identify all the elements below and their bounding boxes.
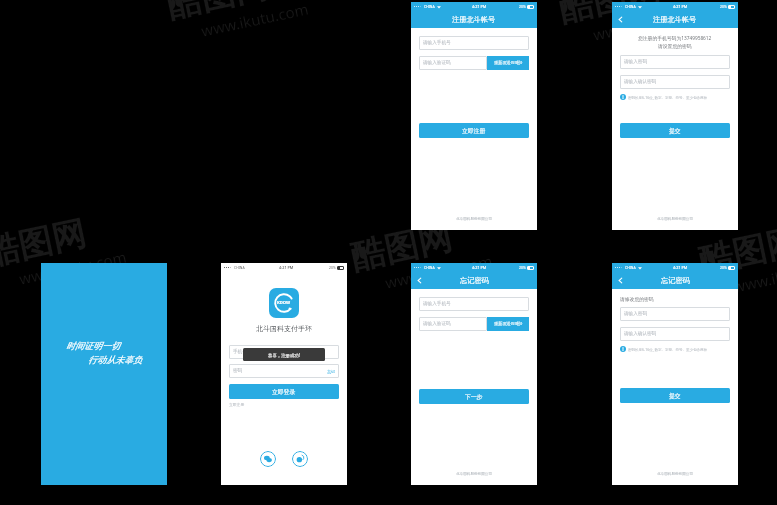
staticText: KDOW: [277, 300, 291, 306]
staticText: 酷图网: [0, 212, 90, 275]
staticText: CHINA: [424, 265, 435, 270]
staticText: www.ikutu.com: [199, 0, 310, 41]
staticText: 4:21 PM: [472, 4, 487, 9]
staticText: 注册北斗帐号: [653, 15, 697, 24]
staticText: 注册北斗帐号: [452, 15, 496, 24]
staticText: 恭喜，注册成功!: [268, 352, 300, 358]
staticText: CHINA: [625, 4, 636, 9]
staticText: 重新发送(59秒): [494, 60, 523, 66]
staticText: 密码长度6-16位, 数字、字母、符号、至少包含两种: [628, 95, 707, 100]
staticText: 您注册的手机号码为13749958612: [638, 35, 712, 42]
staticText: 立即注册: [462, 127, 486, 134]
staticText: 4:21 PM: [279, 265, 294, 270]
staticText: 北斗国科股份有限公司: [456, 217, 492, 222]
staticText: 4:21 PM: [472, 265, 487, 270]
staticText: 下一步: [465, 393, 483, 400]
staticText: www.ikutu.com: [731, 254, 777, 297]
button[interactable]: 手机号: [229, 345, 339, 359]
staticText: 酷图网: [347, 216, 456, 279]
staticText: 立即登录: [272, 388, 296, 395]
staticText: 请输入确认密码: [624, 331, 657, 337]
button[interactable]: Weibo login: [292, 451, 308, 467]
staticText: 20%: [519, 265, 526, 270]
staticText: www.ikutu.com: [591, 2, 702, 45]
button[interactable]: 请输入确认密码: [620, 327, 730, 341]
staticText: 时间证明一切: [66, 340, 120, 351]
button[interactable]: 提交: [620, 123, 730, 138]
button[interactable]: 提交: [620, 388, 730, 403]
staticText: www.ikutu.com: [17, 246, 128, 289]
button[interactable]: 立即注册: [229, 402, 245, 407]
staticText: 忘记密码: [460, 276, 489, 285]
staticText: 密码长度6-16位, 数字、字母、符号、至少包含两种: [628, 347, 707, 352]
staticText: CHINA: [625, 265, 636, 270]
staticText: 忘记: [327, 369, 335, 374]
staticText: 北斗国科股份有限公司: [657, 217, 693, 222]
staticText: www.ikutu.com: [383, 250, 494, 293]
button[interactable]: 请输入手机号: [419, 297, 529, 311]
button[interactable]: Back: [612, 272, 628, 289]
staticText: CHINA: [234, 265, 245, 270]
button[interactable]: 请输入密码: [620, 307, 730, 321]
staticText: 20%: [720, 4, 727, 9]
button[interactable]: 下一步: [419, 389, 529, 404]
staticText: 行动从未辜负: [88, 354, 142, 365]
staticText: 请修改您的密码: [620, 296, 654, 302]
staticText: 4:21 PM: [673, 265, 688, 270]
staticText: 北斗国科股份有限公司: [456, 472, 492, 477]
staticText: 请输入验证码: [423, 60, 451, 66]
staticText: 请输入密码: [624, 59, 647, 65]
staticText: 提交: [669, 127, 681, 134]
staticText: 20%: [329, 265, 336, 270]
button[interactable]: 请输入验证码: [419, 56, 487, 70]
button[interactable]: Back: [612, 11, 628, 28]
button[interactable]: WeChat login: [260, 451, 276, 467]
staticText: 忘记密码: [661, 276, 690, 285]
staticText: 请输入手机号: [423, 301, 451, 307]
staticText: 20%: [720, 265, 727, 270]
staticText: CHINA: [424, 4, 435, 9]
button[interactable]: 请输入手机号: [419, 36, 529, 50]
staticText: 北斗国科支付手环: [256, 324, 312, 333]
staticText: 请输入手机号: [423, 40, 451, 46]
button[interactable]: 立即登录: [229, 384, 339, 399]
button[interactable]: 重新发送(59秒): [487, 56, 529, 70]
button[interactable]: 请输入密码: [620, 55, 730, 69]
button[interactable]: 重新发送(59秒): [487, 317, 529, 331]
staticText: 酷图网: [163, 0, 272, 27]
staticText: 北斗国科股份有限公司: [657, 472, 693, 477]
button[interactable]: 请输入验证码: [419, 317, 487, 331]
staticText: 20%: [519, 4, 526, 9]
staticText: 酷图网: [555, 0, 664, 31]
staticText: 重新发送(59秒): [494, 321, 523, 327]
button[interactable]: 立即注册: [419, 123, 529, 138]
staticText: 请输入确认密码: [624, 79, 657, 85]
staticText: 请输入密码: [624, 311, 647, 317]
button[interactable]: Back: [411, 272, 427, 289]
staticText: 酷图网: [695, 220, 777, 283]
button[interactable]: 请输入确认密码: [620, 75, 730, 89]
staticText: 请设置您的密码: [658, 43, 692, 49]
staticText: 请输入验证码: [423, 321, 451, 327]
staticText: 密码: [233, 368, 243, 374]
staticText: 手机号: [233, 349, 247, 355]
staticText: 提交: [669, 392, 681, 399]
staticText: 4:21 PM: [673, 4, 688, 9]
button[interactable]: 密码: [229, 364, 339, 378]
